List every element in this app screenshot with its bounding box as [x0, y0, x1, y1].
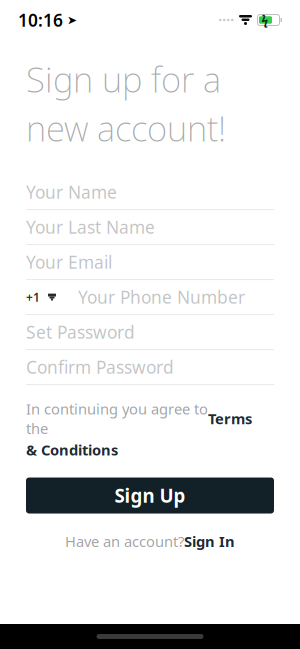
button[interactable]: Sign Up [26, 477, 274, 513]
button[interactable]: Select country code, currently +1 [26, 280, 274, 315]
button[interactable]: Your Name [26, 175, 274, 210]
staticText: Sign In [184, 531, 235, 551]
staticText: Have an account? [65, 531, 184, 551]
staticText: Your Name [26, 181, 117, 204]
staticText: & Conditions [26, 440, 118, 459]
button[interactable]: Set Password [26, 315, 274, 350]
staticText: Sign Up [114, 483, 185, 508]
staticText: ϟ [261, 12, 268, 28]
staticText: Terms [208, 409, 252, 428]
button[interactable]: Have an account? [26, 513, 274, 551]
staticText: Confirm Password [26, 356, 174, 379]
staticText: Your Phone Number [78, 286, 245, 309]
staticText: +1 [26, 289, 40, 305]
staticText: In continuing you agree to the [26, 399, 208, 438]
staticText: Sign up for a [26, 56, 221, 102]
button[interactable]: In continuing you agree to the [26, 385, 274, 459]
staticText: Set Password [26, 321, 135, 344]
staticText: Your Last Name [26, 216, 155, 239]
staticText: Your Email [26, 251, 112, 274]
staticText: 10:16 [18, 8, 63, 31]
button[interactable]: Confirm Password [26, 350, 274, 385]
staticText: new account! [26, 105, 226, 151]
staticText: ➤ [67, 13, 77, 27]
button[interactable]: Your Email [26, 245, 274, 280]
button[interactable]: Your Last Name [26, 210, 274, 245]
